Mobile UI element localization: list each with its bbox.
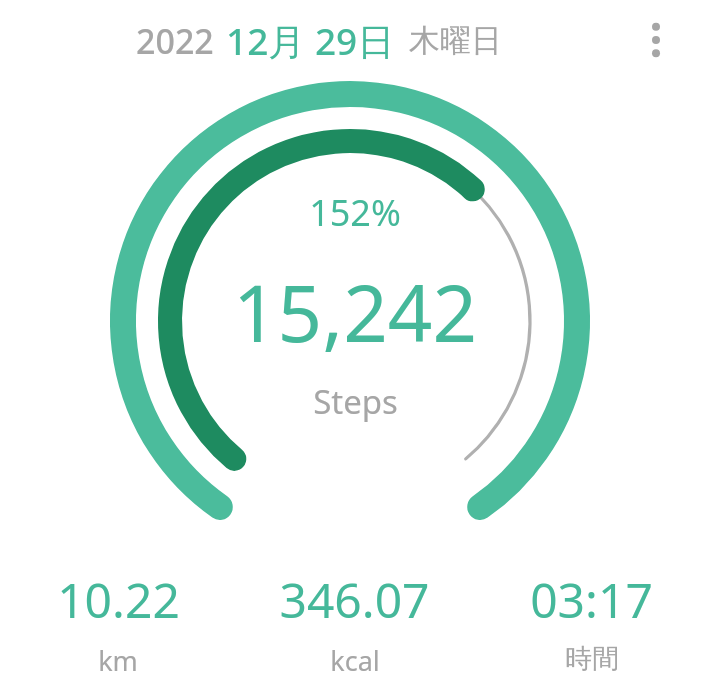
staticText: 10.22 [57, 567, 180, 632]
staticText: kcal [330, 642, 380, 671]
staticText: 152% [309, 188, 401, 237]
staticText: Steps [313, 379, 398, 424]
staticText: 2022 [136, 18, 214, 64]
staticText: 15,242 [233, 259, 477, 365]
button[interactable]: 03:17 [473, 563, 710, 675]
staticText: 木曜日 [409, 21, 502, 60]
staticText: 時間 [565, 642, 619, 671]
button[interactable]: 2022 [136, 15, 502, 66]
button[interactable]: 346.07 [236, 563, 473, 675]
staticText: 346.07 [279, 567, 430, 632]
staticText: km [98, 642, 138, 671]
staticText: 12月 29日 [226, 15, 395, 66]
button[interactable]: Step progress 152 percent [0, 80, 710, 555]
button[interactable]: More options [630, 14, 682, 66]
staticText: 03:17 [530, 567, 653, 632]
button[interactable]: 10.22 [0, 563, 236, 675]
